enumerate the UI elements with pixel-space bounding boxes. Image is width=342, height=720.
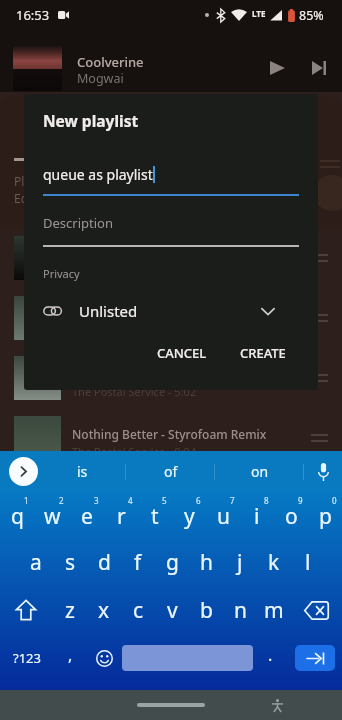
button[interactable]: Such Great Heights bbox=[0, 288, 342, 348]
button[interactable]: Unlisted bbox=[24, 296, 318, 326]
staticText: 1 bbox=[24, 495, 29, 506]
button[interactable]: Home bbox=[137, 703, 205, 707]
staticText: ?123 bbox=[13, 649, 41, 667]
button[interactable]: p bbox=[308, 492, 342, 539]
staticText: of bbox=[164, 462, 178, 481]
staticText: New playlist bbox=[43, 110, 139, 131]
button[interactable]: Nothing Better - Styrofoam Remix bbox=[0, 408, 342, 468]
button[interactable]: Play bbox=[256, 47, 298, 89]
staticText: f bbox=[134, 548, 142, 577]
staticText: d bbox=[98, 548, 111, 577]
button[interactable]: c bbox=[121, 586, 155, 634]
staticText: 0 bbox=[332, 495, 337, 506]
staticText: Two Door Cinema Club - 3:41 bbox=[72, 264, 222, 279]
button[interactable]: CANCEL bbox=[149, 338, 215, 368]
button[interactable]: x bbox=[87, 586, 121, 634]
staticText: Be Still My Heart bbox=[72, 486, 167, 502]
staticText: The Postal Service - 3:56 bbox=[72, 504, 197, 519]
button[interactable]: Clark Gable bbox=[0, 348, 342, 408]
button[interactable]: Expand suggestions bbox=[9, 457, 38, 486]
staticText: 2 bbox=[59, 495, 64, 506]
staticText: v bbox=[167, 596, 178, 625]
staticText: 7 bbox=[230, 495, 235, 506]
button[interactable]: s bbox=[53, 539, 87, 586]
button[interactable]: h bbox=[189, 539, 223, 586]
staticText: h bbox=[200, 548, 213, 577]
button[interactable]: Voice input bbox=[304, 451, 342, 492]
staticText: Sleep Alone bbox=[72, 246, 140, 262]
button[interactable]: ?123 bbox=[0, 634, 53, 682]
staticText: CANCEL bbox=[157, 344, 207, 362]
button[interactable]: on bbox=[215, 451, 304, 492]
button[interactable]: f bbox=[121, 539, 155, 586]
staticText: p bbox=[319, 502, 332, 531]
button[interactable]: n bbox=[223, 586, 257, 634]
button[interactable]: Sleep Alone bbox=[0, 228, 342, 288]
button[interactable]: v bbox=[155, 586, 189, 634]
button[interactable]: . bbox=[253, 634, 288, 682]
staticText: y bbox=[184, 502, 195, 531]
button[interactable]: Album art bbox=[13, 46, 62, 91]
button[interactable]: i bbox=[240, 492, 274, 539]
button[interactable]: t bbox=[138, 492, 172, 539]
staticText: j bbox=[237, 548, 243, 577]
staticText: u bbox=[217, 502, 230, 531]
button[interactable]: Next bbox=[298, 47, 340, 89]
staticText: Description bbox=[43, 214, 113, 232]
staticText: 8 bbox=[264, 495, 269, 506]
button[interactable]: Accessibility bbox=[268, 696, 286, 714]
button[interactable]: Enter bbox=[288, 634, 342, 682]
staticText: Coolverine bbox=[77, 53, 144, 71]
button[interactable]: CREATE bbox=[232, 338, 294, 368]
button[interactable]: q bbox=[0, 492, 35, 539]
button[interactable]: Space bbox=[122, 634, 253, 682]
staticText: queue as playlist bbox=[43, 165, 153, 184]
button[interactable]: l bbox=[291, 539, 325, 586]
staticText: 4 bbox=[128, 495, 133, 506]
button[interactable]: a bbox=[18, 539, 53, 586]
button[interactable]: Backspace bbox=[291, 586, 342, 634]
staticText: , bbox=[68, 644, 73, 666]
staticText: Such Great Heights bbox=[72, 306, 183, 322]
staticText: 9 bbox=[298, 495, 303, 506]
button[interactable]: e bbox=[70, 492, 104, 539]
button[interactable]: j bbox=[223, 539, 257, 586]
button[interactable]: g bbox=[155, 539, 189, 586]
staticText: b bbox=[200, 596, 213, 625]
button[interactable]: is bbox=[38, 451, 126, 492]
staticText: w bbox=[44, 502, 61, 531]
staticText: CREATE bbox=[240, 344, 286, 362]
staticText: Privacy bbox=[43, 266, 80, 281]
staticText: a bbox=[30, 548, 42, 577]
button[interactable]: r bbox=[104, 492, 138, 539]
staticText: i bbox=[254, 502, 260, 531]
staticText: 85% bbox=[299, 7, 324, 24]
button[interactable]: of bbox=[126, 451, 215, 492]
staticText: 5 bbox=[162, 495, 167, 506]
button[interactable]: z bbox=[52, 586, 87, 634]
button[interactable]: Emoji bbox=[87, 634, 122, 682]
staticText: is bbox=[77, 462, 88, 481]
staticText: q bbox=[11, 502, 24, 531]
button[interactable]: b bbox=[189, 586, 223, 634]
button[interactable]: k bbox=[257, 539, 291, 586]
button[interactable]: y bbox=[172, 492, 206, 539]
button[interactable]: Shuffle bbox=[314, 175, 342, 211]
button[interactable]: o bbox=[274, 492, 308, 539]
staticText: s bbox=[65, 548, 76, 577]
button[interactable]: , bbox=[53, 634, 87, 682]
staticText: m bbox=[264, 596, 284, 625]
button[interactable]: Be Still My Heart bbox=[0, 468, 342, 528]
staticText: Nothing Better - Styrofoam Remix bbox=[72, 426, 267, 442]
staticText: e bbox=[81, 502, 93, 531]
button[interactable]: d bbox=[87, 539, 121, 586]
staticText: Edit bbox=[14, 190, 36, 206]
staticText: z bbox=[65, 596, 75, 625]
button[interactable]: w bbox=[35, 492, 70, 539]
staticText: l bbox=[305, 548, 311, 577]
button[interactable]: Shift bbox=[0, 586, 52, 634]
button[interactable]: m bbox=[257, 586, 291, 634]
button[interactable]: u bbox=[206, 492, 240, 539]
